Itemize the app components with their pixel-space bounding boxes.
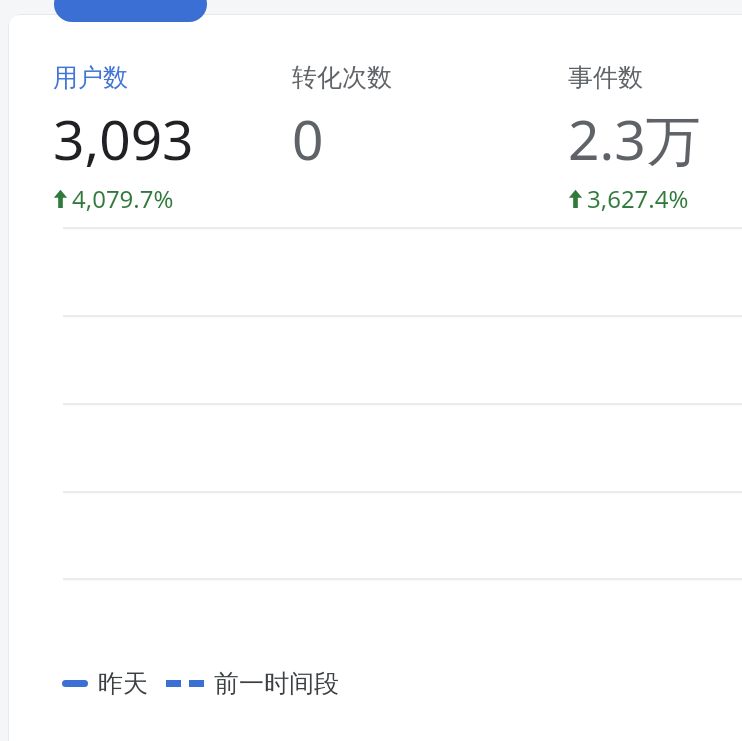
button[interactable]: Selected tab bbox=[54, 0, 207, 22]
staticText: 4,079.7% bbox=[72, 182, 174, 215]
staticText: 3,093 bbox=[53, 101, 194, 176]
staticText: 事件数 bbox=[568, 62, 643, 93]
staticText: 转化次数 bbox=[292, 62, 392, 93]
staticText: 昨天 bbox=[98, 668, 148, 699]
button[interactable]: 转化次数 bbox=[292, 62, 392, 201]
staticText: 0 bbox=[292, 101, 324, 176]
button[interactable]: 用户数 bbox=[53, 62, 194, 215]
button[interactable]: 事件数 bbox=[568, 62, 701, 215]
button[interactable]: 昨天 bbox=[62, 668, 339, 699]
staticText: 2.3万 bbox=[568, 101, 701, 176]
staticText: 3,627.4% bbox=[587, 182, 689, 215]
staticText: 用户数 bbox=[53, 62, 128, 93]
staticText: 前一时间段 bbox=[214, 668, 339, 699]
